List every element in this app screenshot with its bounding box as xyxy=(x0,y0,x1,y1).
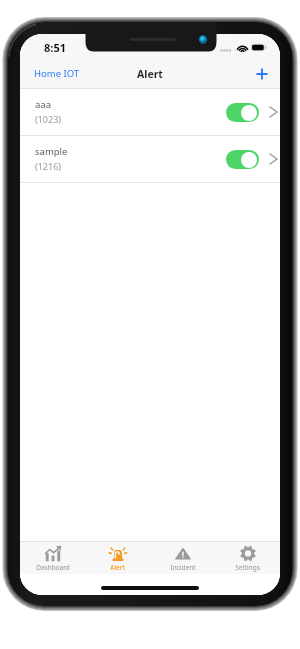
staticText: (1023) xyxy=(35,113,61,125)
staticText: Alert xyxy=(110,563,125,572)
staticText: aaa xyxy=(35,98,51,111)
button[interactable]: aaa xyxy=(20,89,280,136)
button[interactable]: Incident xyxy=(150,545,215,572)
staticText: 8:51 xyxy=(44,40,66,55)
staticText: Alert xyxy=(137,67,163,81)
button[interactable]: Toggle enabled xyxy=(226,150,259,169)
staticText: sample xyxy=(35,145,68,158)
staticText: (1216) xyxy=(35,160,61,172)
button[interactable]: Dashboard xyxy=(20,545,85,572)
staticText: Home IOT xyxy=(34,67,80,80)
button[interactable]: sample xyxy=(20,136,280,183)
button[interactable]: Home IOT xyxy=(20,60,94,87)
button[interactable]: Settings xyxy=(215,545,280,572)
button[interactable]: Toggle enabled xyxy=(226,103,259,122)
staticText: Settings xyxy=(235,563,260,572)
button[interactable]: Alert xyxy=(85,545,150,572)
staticText: Incident xyxy=(170,563,196,572)
staticText: Dashboard xyxy=(36,563,70,572)
button[interactable]: Add alert xyxy=(244,61,280,87)
